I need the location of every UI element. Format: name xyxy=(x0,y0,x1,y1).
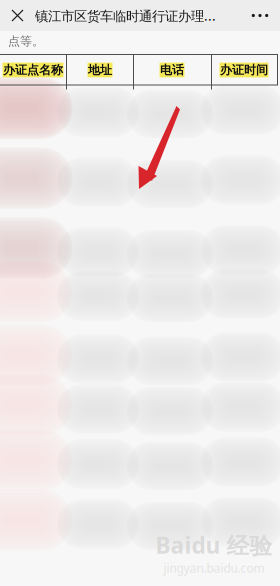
staticText: 电话 xyxy=(160,63,184,77)
staticText: 地址 xyxy=(88,63,112,77)
staticText: 镇江市区货车临时通行证办理点-… xyxy=(35,7,225,24)
staticText: jingyan.baidu.com xyxy=(163,560,264,576)
staticText: 办证时间 xyxy=(220,63,268,77)
staticText: 点等。 xyxy=(8,34,44,49)
staticText: 办证点名称 xyxy=(3,63,63,77)
staticText: Baidu 经验 xyxy=(155,530,272,560)
button[interactable]: More options xyxy=(240,0,280,31)
button[interactable]: Close xyxy=(0,0,35,31)
